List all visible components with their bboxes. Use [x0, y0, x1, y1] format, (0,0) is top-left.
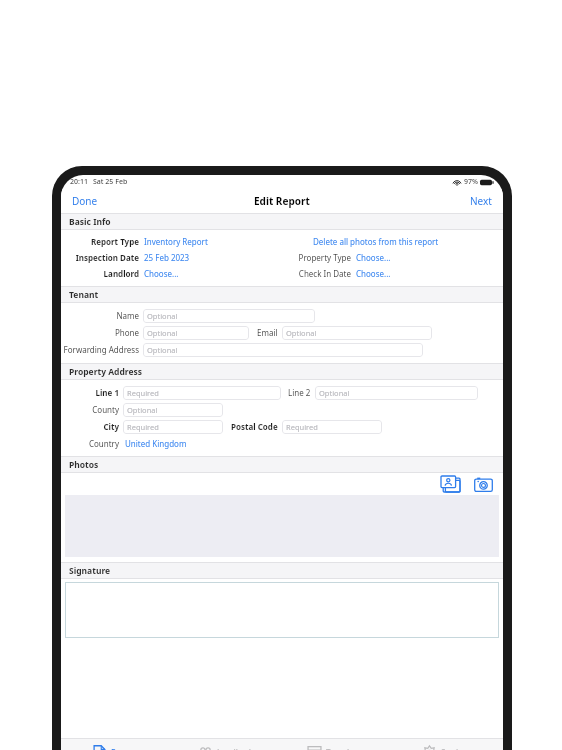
staticText: Optional	[319, 388, 350, 398]
staticText: Optional	[127, 405, 158, 415]
staticText: Delete all photos from this report	[313, 236, 439, 247]
staticText: Optional	[147, 345, 178, 355]
button[interactable]: United Kingdom	[123, 437, 189, 450]
staticText: Choose...	[356, 268, 391, 279]
staticText: Country	[88, 438, 119, 449]
staticText: Done	[72, 194, 98, 208]
button[interactable]: Reports	[61, 739, 171, 750]
button[interactable]: Signature pad	[65, 582, 499, 638]
staticText: Inventory Report	[144, 236, 208, 247]
staticText: Property Type	[298, 252, 351, 263]
staticText: Line 1	[95, 387, 119, 398]
button[interactable]: Choose photos from library	[439, 474, 463, 494]
staticText: Templates	[326, 747, 366, 750]
staticText: Edit Report	[254, 194, 310, 208]
button[interactable]: Delete all photos from this report	[311, 235, 441, 248]
button[interactable]: Choose...	[354, 267, 393, 280]
staticText: Settings	[441, 747, 473, 750]
staticText: Next	[470, 194, 492, 208]
button[interactable]: Inventory Report	[142, 235, 210, 248]
staticText: Phone	[114, 327, 139, 338]
staticText: United Kingdom	[125, 438, 187, 449]
button[interactable]: Settings	[392, 739, 503, 750]
staticText: Choose...	[356, 252, 391, 263]
staticText: Report Type	[90, 236, 139, 247]
staticText: Optional	[147, 328, 178, 338]
button[interactable]: Done	[68, 192, 102, 210]
staticText: Email	[257, 327, 278, 338]
button[interactable]: Next	[466, 192, 496, 210]
staticText: Check In Date	[298, 268, 351, 279]
staticText: Reports	[111, 747, 141, 750]
staticText: Required	[127, 388, 159, 398]
staticText: Landlord	[103, 268, 139, 279]
staticText: Basic Info	[69, 216, 111, 228]
button[interactable]: Required	[123, 386, 281, 400]
button[interactable]: Choose...	[142, 267, 181, 280]
button[interactable]: Optional	[143, 309, 315, 323]
button[interactable]: Optional	[282, 326, 432, 340]
staticText: 20:11	[70, 177, 88, 187]
button[interactable]: Optional	[315, 386, 478, 400]
button[interactable]: Optional	[123, 403, 223, 417]
staticText: Property Address	[69, 366, 143, 378]
staticText: Forwarding Address	[63, 344, 139, 355]
staticText: County	[92, 404, 119, 415]
button[interactable]: Optional	[143, 326, 249, 340]
staticText: Required	[286, 422, 318, 432]
button[interactable]: Required	[282, 420, 382, 434]
staticText: Line 2	[288, 387, 311, 398]
staticText: Name	[116, 310, 139, 321]
staticText: Signature	[69, 565, 111, 577]
button[interactable]: Landlords	[171, 739, 281, 750]
staticText: 25 Feb 2023	[144, 252, 190, 263]
staticText: Photos	[69, 459, 99, 471]
button[interactable]: Templates	[281, 739, 392, 750]
staticText: Required	[127, 422, 159, 432]
staticText: Optional	[286, 328, 317, 338]
staticText: Landlords	[217, 747, 255, 750]
staticText: Postal Code	[231, 421, 278, 432]
staticText: City	[103, 421, 119, 432]
staticText: Sat 25 Feb	[93, 177, 128, 187]
button[interactable]: 25 Feb 2023	[142, 251, 192, 264]
staticText: Optional	[147, 311, 178, 321]
staticText: Choose...	[144, 268, 179, 279]
button[interactable]: Choose...	[354, 251, 393, 264]
button[interactable]: Take photo with camera	[471, 474, 495, 494]
button[interactable]: Required	[123, 420, 223, 434]
staticText: Inspection Date	[75, 252, 139, 263]
staticText: 97%	[464, 177, 478, 187]
staticText: Tenant	[69, 289, 99, 301]
button[interactable]: Optional	[143, 343, 423, 357]
